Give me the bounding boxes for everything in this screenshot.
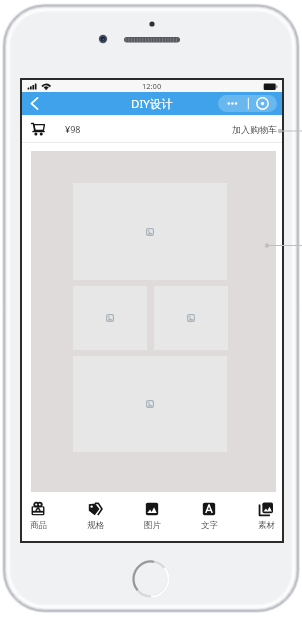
button[interactable]: More options [218,95,248,112]
button[interactable]: 文字 [199,492,219,541]
button[interactable]: 规格 [85,492,105,541]
staticText: 素材 [258,520,275,531]
staticText: 图片 [144,520,161,531]
button[interactable]: 图片 [142,492,162,541]
button[interactable] [154,286,228,350]
staticText: 规格 [87,520,104,531]
staticText: 12:00 [142,81,162,91]
staticText: 文字 [201,520,218,531]
button[interactable]: 商品 [28,492,48,541]
button[interactable]: Shopping cart [31,122,45,136]
button[interactable]: Back [24,93,45,114]
button[interactable]: 加入购物车 [232,124,277,135]
staticText: ¥98 [65,123,81,135]
button[interactable]: 素材 [256,492,276,541]
staticText: 商品 [30,520,47,531]
staticText: DIY设计 [131,96,173,112]
staticText: 加入购物车 [232,124,277,135]
button[interactable]: Preview [251,95,277,112]
button[interactable] [73,286,147,350]
